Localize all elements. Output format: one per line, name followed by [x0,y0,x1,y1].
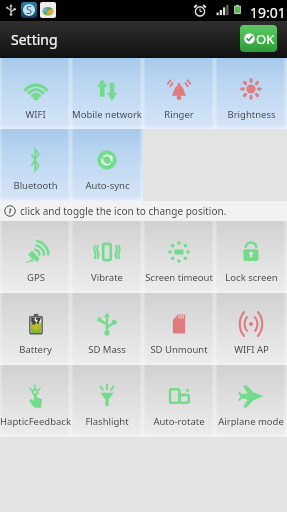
staticText: 19:01 [250,3,286,22]
button[interactable]: Auto-sync [71,129,143,201]
staticText: Bluetooth [13,179,58,192]
staticText: Auto-sync [85,179,130,192]
button[interactable]: Auto-rotate [143,365,215,437]
staticText: Setting [11,30,58,49]
staticText: Vibrate [91,271,123,284]
button[interactable]: Airplane mode [215,365,287,437]
staticText: OK [256,30,275,48]
button[interactable]: Battery [0,293,71,365]
staticText: GPS [27,271,45,284]
button[interactable]: OK [240,25,277,52]
staticText: Brightness [227,108,276,121]
staticText: S [26,2,33,17]
staticText: Mobile network [72,108,142,121]
button[interactable]: Brightness [215,58,287,129]
button[interactable]: HapticFeedback [0,365,71,437]
button[interactable]: GPS [0,221,71,293]
staticText: WIFI AP [234,343,269,356]
button[interactable]: Bluetooth [0,129,71,201]
button[interactable]: SD Unmount [143,293,215,365]
staticText: Screen timeout [145,271,213,284]
staticText: Flashlight [85,415,129,428]
button[interactable]: WIFI [0,58,71,129]
button[interactable]: Vibrate [71,221,143,293]
staticText: Airplane mode [218,415,284,428]
button[interactable]: WIFI AP [215,293,287,365]
staticText: WIFI [25,108,46,121]
button[interactable]: Screen timeout [143,221,215,293]
button[interactable]: SD Mass [71,293,143,365]
staticText: click and toggle the icon to change posi… [20,204,227,218]
button[interactable]: Mobile network [71,58,143,129]
staticText: Battery [19,343,52,356]
staticText: SD Mass [88,343,126,356]
button[interactable]: Ringer [143,58,215,129]
staticText: HapticFeedback [0,415,71,428]
staticText: Auto-rotate [153,415,205,428]
staticText: Ringer [164,108,194,121]
staticText: Lock screen [225,271,278,284]
staticText: SD Unmount [150,343,208,356]
button[interactable]: Flashlight [71,365,143,437]
button[interactable]: Lock screen [215,221,287,293]
